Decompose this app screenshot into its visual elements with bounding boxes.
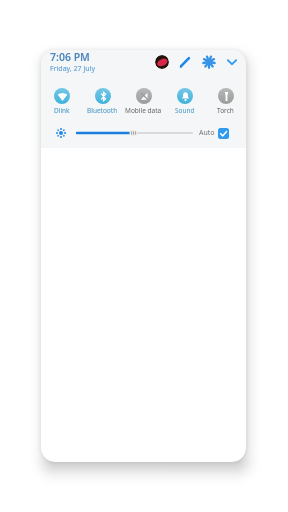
button[interactable]: [218, 128, 229, 139]
button[interactable]: [203, 56, 215, 68]
button[interactable]: Torch: [205, 88, 246, 115]
staticText: Friday, 27 July: [50, 64, 95, 74]
button[interactable]: Mobile data: [123, 88, 164, 115]
staticText: Torch: [217, 106, 234, 115]
button[interactable]: [226, 56, 238, 68]
button[interactable]: Bluetooth: [82, 88, 123, 115]
staticText: Auto: [199, 128, 215, 138]
button[interactable]: 7:06 PM: [50, 50, 95, 74]
button[interactable]: [155, 55, 169, 69]
staticText: Bluetooth: [87, 106, 118, 115]
button[interactable]: Sound: [164, 88, 205, 115]
button[interactable]: [56, 128, 66, 138]
staticText: Sound: [175, 106, 195, 115]
button[interactable]: Dlink: [41, 88, 82, 115]
button[interactable]: [178, 55, 192, 69]
staticText: 7:06 PM: [50, 50, 90, 64]
staticText: Dlink: [54, 106, 70, 115]
staticText: Mobile data: [125, 106, 162, 115]
button[interactable]: [77, 126, 192, 140]
